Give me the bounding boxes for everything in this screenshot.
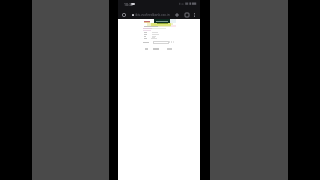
staticText: ibis.vsofeedbank.xxx.in [135,13,170,17]
button[interactable]: ibis.vsofeedbank.xxx.in [129,11,173,19]
staticText: 10:32 [124,2,133,7]
button[interactable]: Reload [120,11,128,19]
button[interactable]: More options [190,11,198,19]
button[interactable] [153,41,169,44]
button[interactable]: Switch tabs [183,11,191,19]
button[interactable]: New tab [173,11,181,19]
